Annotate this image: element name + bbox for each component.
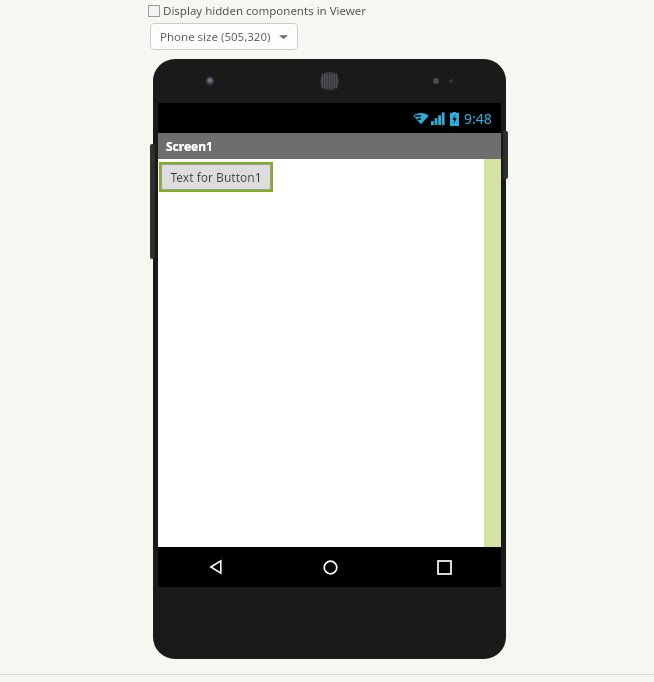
staticText: Display hidden components in Viewer (163, 3, 367, 19)
button[interactable]: Display hidden components in Viewer (148, 3, 367, 19)
button[interactable]: Recent apps (387, 547, 501, 587)
button[interactable]: Back (158, 547, 273, 587)
button[interactable]: Text for Button1 (161, 164, 271, 190)
staticText: Screen1 (166, 138, 213, 154)
staticText: Phone size (505,320) (160, 29, 271, 45)
staticText: 9:48 (464, 109, 492, 128)
button[interactable]: Home (273, 547, 387, 587)
button[interactable]: Phone size (505,320) (150, 23, 298, 50)
staticText: Text for Button1 (170, 169, 262, 185)
